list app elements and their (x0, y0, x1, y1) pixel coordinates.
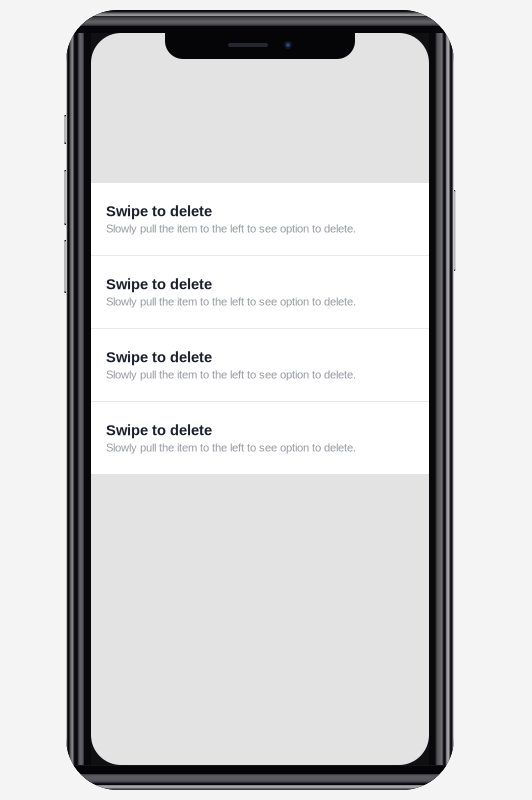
staticText: Slowly pull the item to the left to see … (106, 441, 356, 454)
button[interactable]: Swipe to delete (91, 329, 429, 401)
staticText: Slowly pull the item to the left to see … (106, 368, 356, 381)
button[interactable]: Swipe to delete (91, 402, 429, 474)
staticText: Slowly pull the item to the left to see … (106, 295, 356, 308)
button[interactable]: Swipe to delete (91, 183, 429, 255)
staticText: Swipe to delete (106, 276, 212, 292)
staticText: Slowly pull the item to the left to see … (106, 222, 356, 235)
staticText: Swipe to delete (106, 349, 212, 365)
staticText: Swipe to delete (106, 203, 212, 219)
staticText: Swipe to delete (106, 422, 212, 438)
button[interactable]: Swipe to delete (91, 256, 429, 328)
